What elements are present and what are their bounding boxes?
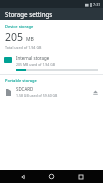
staticText: Total used of 1.94 GB — [5, 45, 42, 50]
staticText: SDCARD — [16, 86, 34, 92]
staticText: Internal storage — [16, 55, 50, 61]
staticText: 205 — [5, 30, 24, 44]
button[interactable]: Eject SD card — [91, 88, 100, 97]
button[interactable]: Recent apps — [74, 170, 87, 183]
button[interactable]: Internal storage — [0, 54, 103, 72]
staticText: Storage settings — [5, 10, 53, 18]
staticText: Portable storage — [5, 78, 37, 83]
staticText: Device storage — [5, 24, 34, 29]
staticText: MB — [26, 36, 34, 43]
staticText: 205 MB used of 1.94 GB — [16, 62, 56, 67]
button[interactable]: Back — [16, 170, 29, 183]
button[interactable]: SDCARD — [0, 84, 103, 100]
staticText: 1.58 GB used of 59.60 GB — [16, 93, 58, 98]
staticText: 7:31 — [93, 2, 101, 7]
button[interactable]: Home — [45, 170, 58, 183]
